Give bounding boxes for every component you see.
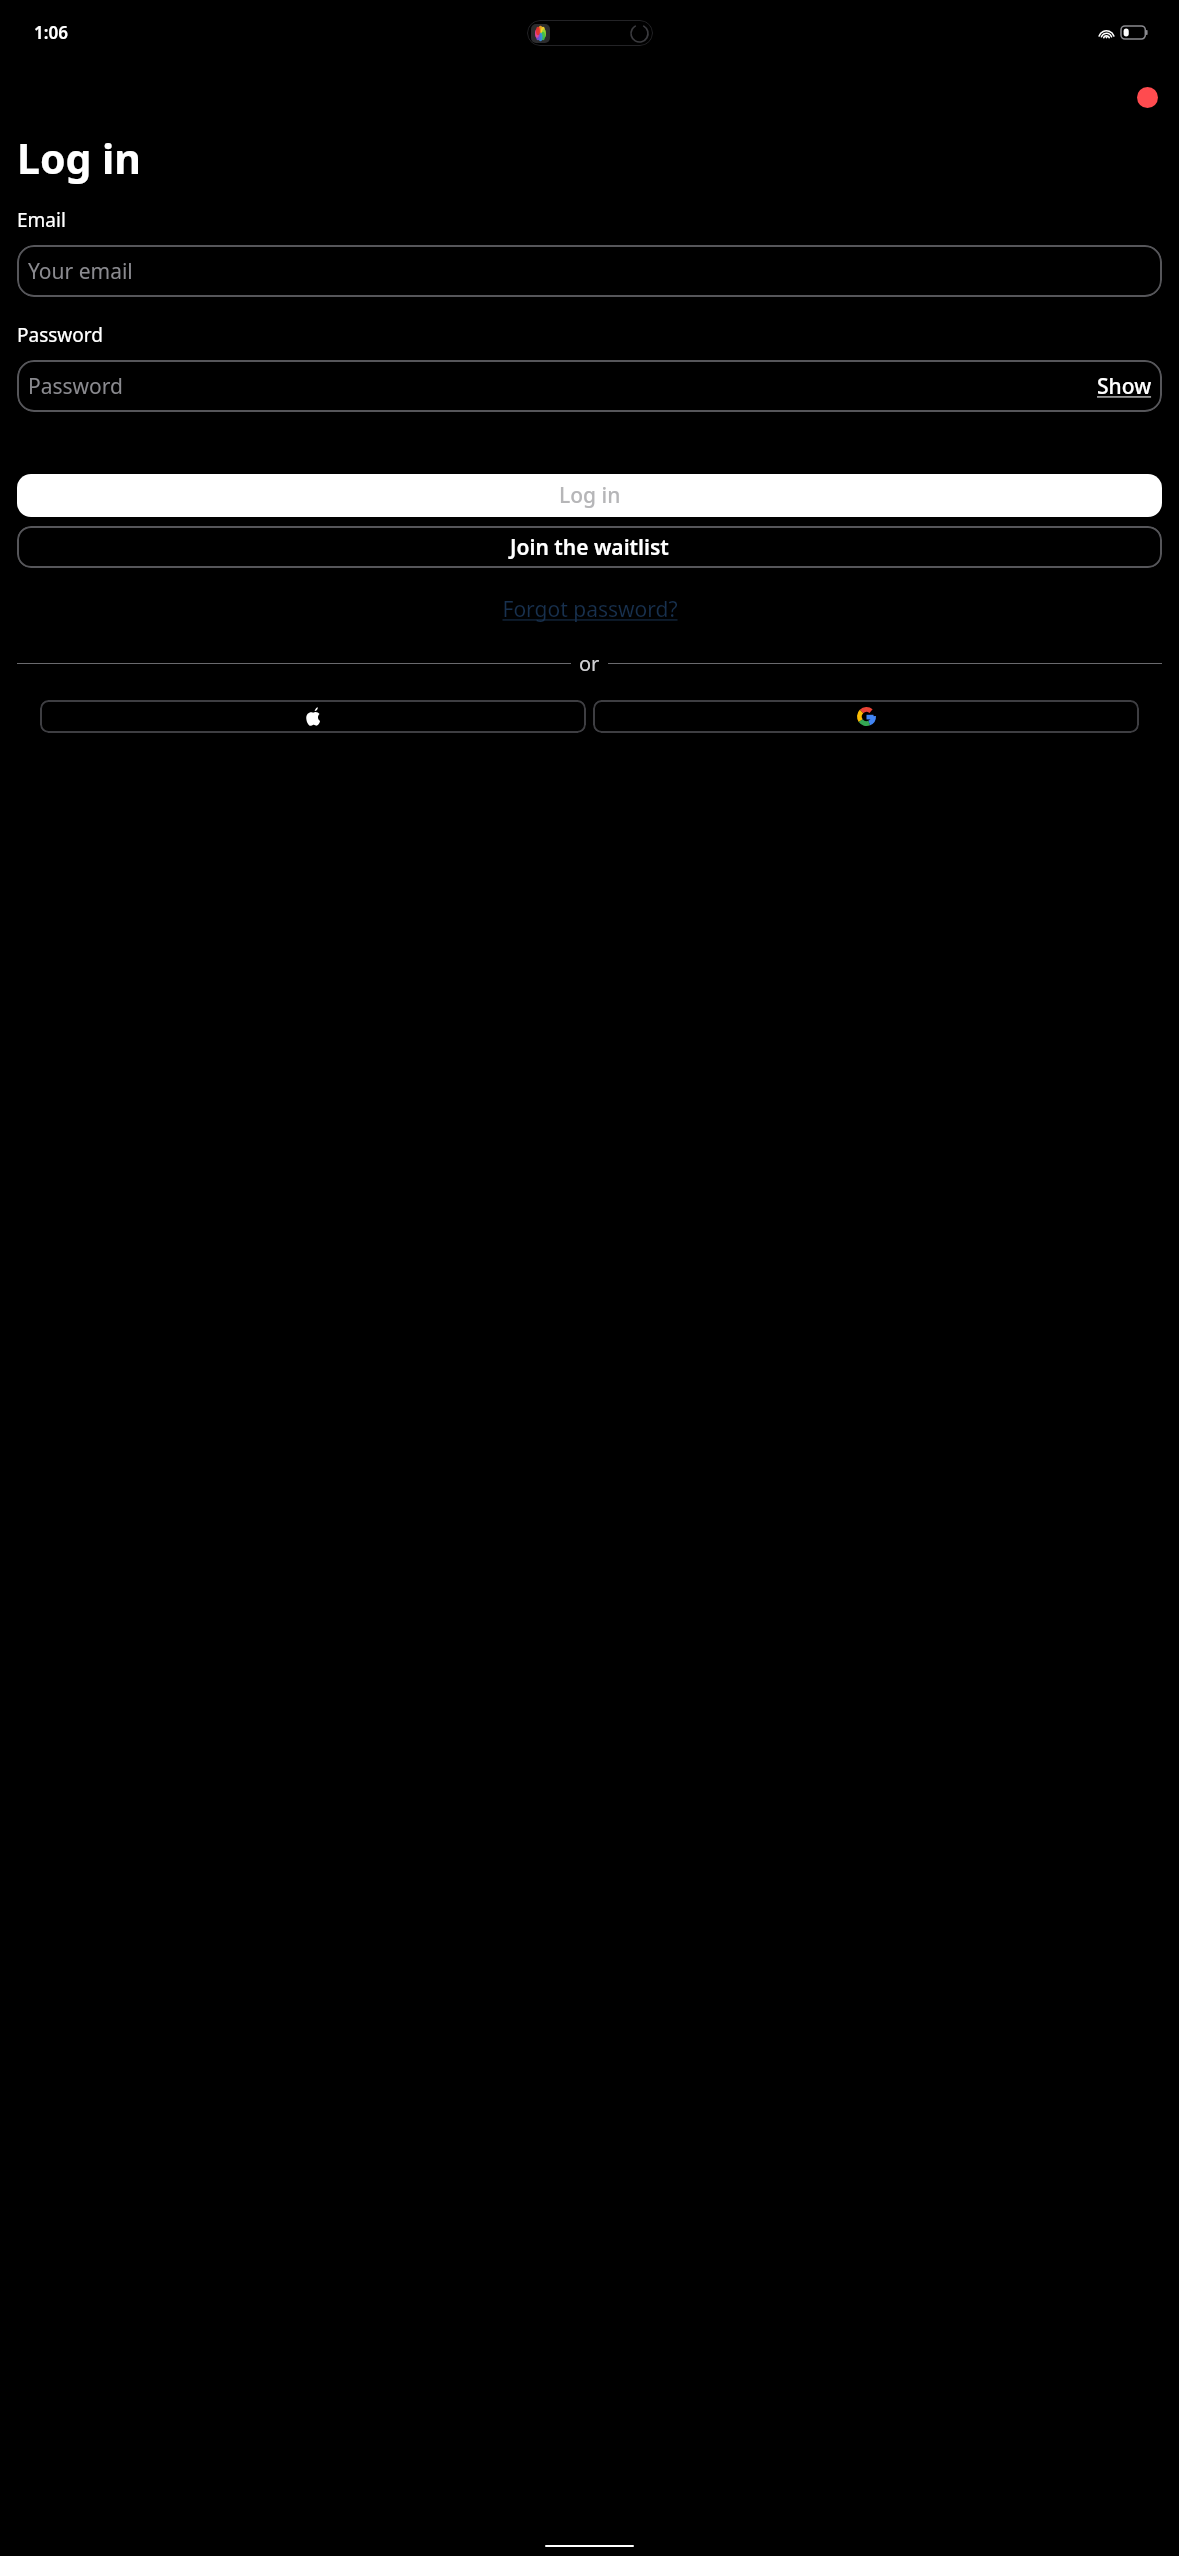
- staticText: 1:06: [34, 21, 68, 44]
- button[interactable]: Forgot password?: [502, 595, 678, 624]
- button[interactable]: Sign in with Apple: [40, 700, 586, 733]
- staticText: Your email: [28, 257, 133, 286]
- staticText: Show: [1097, 372, 1152, 401]
- button[interactable]: Password: [17, 360, 1162, 412]
- staticText: Password: [17, 322, 103, 348]
- staticText: Forgot password?: [502, 595, 678, 624]
- button[interactable]: Show: [1097, 372, 1152, 401]
- button[interactable]: Log in: [17, 474, 1162, 517]
- button[interactable]: Recording indicator: [1137, 87, 1158, 108]
- staticText: Password: [28, 372, 123, 401]
- staticText: Join the waitlist: [510, 533, 669, 562]
- staticText: or: [579, 650, 600, 677]
- button[interactable]: Your email: [17, 245, 1162, 297]
- staticText: Log in: [17, 130, 142, 186]
- staticText: Email: [17, 207, 66, 233]
- staticText: Log in: [559, 481, 621, 510]
- button[interactable]: Sign in with Google: [593, 700, 1139, 733]
- button[interactable]: Join the waitlist: [17, 526, 1162, 568]
